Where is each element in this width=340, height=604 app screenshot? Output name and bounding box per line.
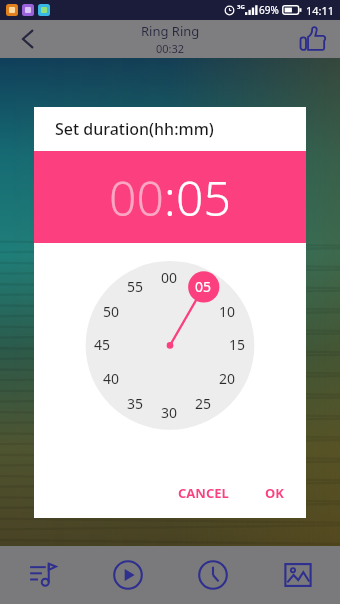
button[interactable]: 00 (109, 165, 164, 230)
button[interactable]: 25 (195, 394, 212, 413)
button[interactable]: Timer (170, 546, 255, 604)
button[interactable]: 05 (195, 277, 212, 296)
button[interactable]: Gallery (255, 546, 340, 604)
staticText: 3G (237, 3, 245, 11)
button[interactable]: 20 (219, 369, 236, 388)
button[interactable]: 05 (176, 165, 231, 230)
staticText: Set duration(hh:mm) (55, 118, 214, 140)
button[interactable]: 15 (229, 335, 246, 354)
button[interactable]: 45 (94, 335, 111, 354)
button[interactable]: Like (286, 20, 340, 58)
button[interactable]: 40 (103, 369, 120, 388)
button[interactable]: 30 (161, 403, 178, 422)
button[interactable]: CANCEL (168, 475, 239, 511)
button[interactable]: Play (85, 546, 170, 604)
staticText: Ring Ring (141, 22, 200, 40)
staticText: OK (265, 484, 284, 502)
button[interactable]: Playlist (0, 546, 85, 604)
button[interactable]: 00 (161, 268, 178, 287)
staticText: 69% (259, 3, 279, 17)
staticText: 14:11 (306, 3, 335, 18)
staticText: 00:32 (156, 41, 185, 56)
staticText: : (164, 165, 176, 230)
button[interactable]: 55 (127, 277, 144, 296)
button[interactable]: Back (0, 20, 56, 58)
button[interactable]: 35 (127, 394, 144, 413)
staticText: CANCEL (178, 484, 229, 502)
button[interactable]: 10 (219, 302, 236, 321)
button[interactable]: 50 (103, 302, 120, 321)
button[interactable]: OK (255, 475, 294, 511)
